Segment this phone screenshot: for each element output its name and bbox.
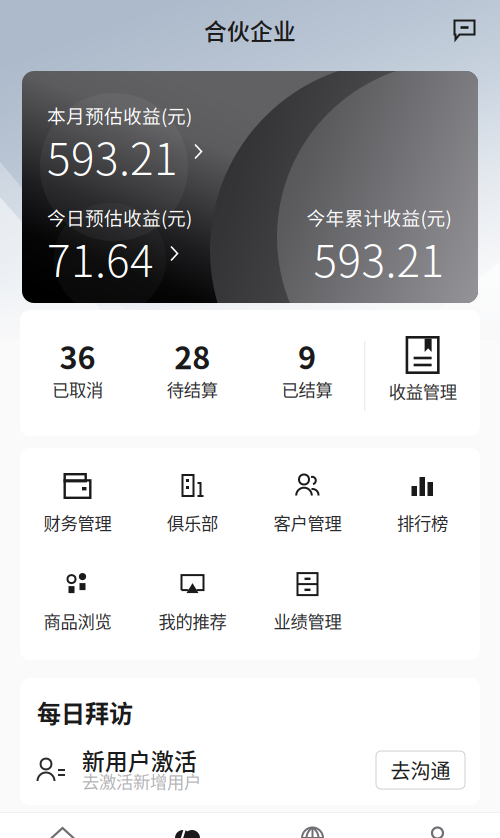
staticText: 已结算 bbox=[281, 376, 332, 402]
staticText: 9 bbox=[298, 334, 316, 378]
button[interactable]: 客户管理 bbox=[250, 472, 365, 535]
staticText: 每日拜访 bbox=[37, 695, 133, 729]
staticText: 71.64 bbox=[47, 226, 154, 290]
staticText: 去沟通 bbox=[390, 755, 450, 784]
staticText: 今年累计收益(元) bbox=[306, 203, 451, 230]
staticText: 本月预估收益(元) bbox=[47, 101, 192, 128]
staticText: 593.21 bbox=[313, 226, 444, 290]
staticText: 合伙企业 bbox=[204, 14, 296, 46]
button[interactable]: 9 bbox=[249, 338, 364, 414]
staticText: 收益管理 bbox=[389, 378, 457, 404]
button[interactable]: 排行榜 bbox=[365, 472, 480, 535]
button[interactable]: 商品浏览 bbox=[20, 570, 135, 633]
button[interactable]: 28 bbox=[135, 338, 250, 414]
button[interactable]: 消息 bbox=[442, 7, 488, 53]
staticText: 今日预估收益(元) bbox=[47, 203, 192, 230]
staticText: 28 bbox=[174, 334, 210, 378]
button[interactable]: 发现 bbox=[250, 825, 375, 838]
staticText: 俱乐部 bbox=[167, 510, 218, 535]
staticText: 36 bbox=[59, 334, 95, 378]
button[interactable]: 合伙企业 bbox=[125, 825, 250, 838]
staticText: 商品浏览 bbox=[43, 608, 111, 633]
staticText: 待结算 bbox=[167, 376, 218, 402]
button[interactable]: 本月预估收益(元) bbox=[22, 106, 204, 160]
staticText: 新用户激活 bbox=[82, 744, 197, 776]
button[interactable]: 我的推荐 bbox=[135, 570, 250, 633]
button[interactable]: 财务管理 bbox=[20, 472, 135, 535]
staticText: 排行榜 bbox=[397, 510, 448, 535]
button[interactable]: 今日预估收益(元) bbox=[22, 208, 192, 262]
button[interactable]: 新用户激活 bbox=[20, 747, 480, 793]
staticText: 593.21 bbox=[47, 124, 178, 188]
staticText: 业绩管理 bbox=[273, 608, 341, 633]
button[interactable]: 收益管理 bbox=[365, 338, 480, 414]
staticText: 客户管理 bbox=[273, 510, 341, 535]
staticText: 财务管理 bbox=[43, 510, 111, 535]
button[interactable]: 36 bbox=[20, 338, 135, 414]
button[interactable]: 俱乐部 bbox=[135, 472, 250, 535]
button[interactable]: 首页 bbox=[0, 825, 125, 838]
button[interactable]: 业绩管理 bbox=[250, 570, 365, 633]
button[interactable]: 我的 bbox=[375, 825, 500, 838]
staticText: 我的推荐 bbox=[158, 608, 226, 633]
staticText: 已取消 bbox=[52, 376, 103, 402]
staticText: 去激活新增用户 bbox=[82, 768, 201, 794]
